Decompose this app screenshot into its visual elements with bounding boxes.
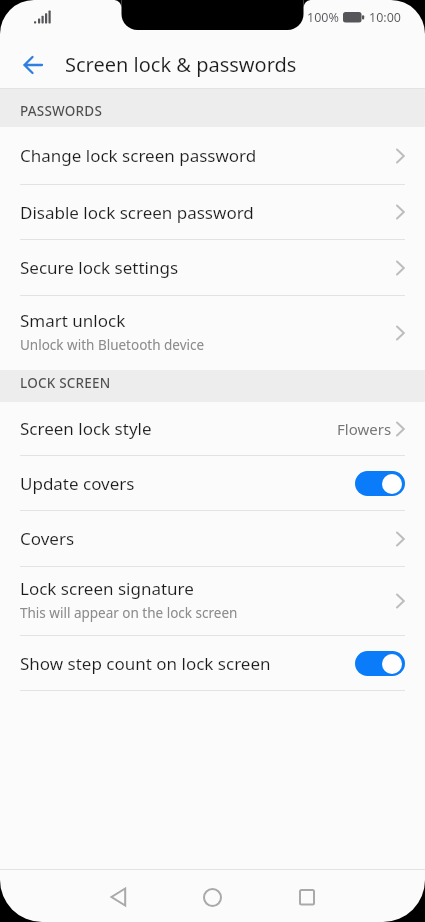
button[interactable]: Show step count on lock screen: [0, 636, 425, 690]
button[interactable]: [0, 35, 58, 88]
button[interactable]: [355, 471, 405, 496]
button[interactable]: Update covers: [0, 456, 425, 510]
button[interactable]: Screen lock style: [0, 402, 425, 455]
button[interactable]: [186, 870, 238, 922]
button[interactable]: [281, 870, 333, 922]
button[interactable]: [355, 651, 405, 676]
staticText: Flowers: [337, 419, 392, 439]
staticText: Disable lock screen password: [20, 201, 254, 224]
button[interactable]: Change lock screen password: [0, 127, 425, 184]
staticText: Show step count on lock screen: [20, 652, 271, 675]
staticText: Unlock with Bluetooth device: [20, 336, 205, 354]
staticText: Update covers: [20, 472, 135, 495]
staticText: Covers: [20, 527, 75, 550]
staticText: LOCK SCREEN: [20, 374, 111, 392]
button[interactable]: Lock screen signature: [0, 567, 425, 635]
staticText: Smart unlock: [20, 309, 126, 332]
staticText: Secure lock settings: [20, 256, 179, 279]
button[interactable]: Disable lock screen password: [0, 185, 425, 239]
button[interactable]: [92, 870, 144, 922]
staticText: Lock screen signature: [20, 577, 194, 600]
staticText: 10:00: [369, 9, 401, 26]
staticText: PASSWORDS: [20, 102, 103, 120]
button[interactable]: Smart unlock: [0, 296, 425, 370]
staticText: This will appear on the lock screen: [20, 604, 238, 622]
staticText: Screen lock & passwords: [65, 51, 297, 78]
staticText: Screen lock style: [20, 417, 152, 440]
staticText: 100%: [307, 9, 339, 26]
button[interactable]: Secure lock settings: [0, 240, 425, 295]
button[interactable]: Covers: [0, 511, 425, 566]
staticText: Change lock screen password: [20, 144, 257, 167]
